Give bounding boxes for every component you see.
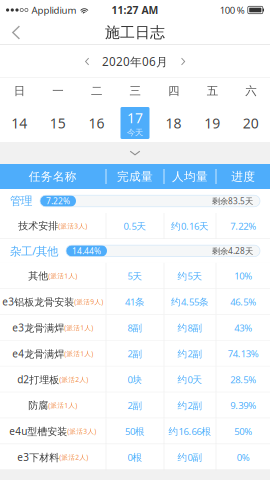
staticText: 0.5天 [123,219,146,232]
staticText: 14 [11,113,27,133]
staticText: 约2副 [177,347,202,360]
staticText: e3下材料 [17,450,59,464]
button[interactable]: d2打埋板 [0,366,270,392]
button[interactable]: 技术安排 [0,213,270,239]
staticText: 10% [234,269,252,282]
staticText: (派活1人) [64,323,93,332]
staticText: 五 [207,84,218,98]
button[interactable]: Back [0,20,32,45]
staticText: 约2副 [177,399,202,412]
staticText: 人均量 [172,169,208,184]
staticText: 43% [234,321,252,334]
staticText: 74.13% [228,347,259,360]
staticText: 100 % [220,3,245,17]
button[interactable]: 杂工/其他 [0,239,270,263]
staticText: 剩余83.5天 [212,195,253,207]
staticText: 2副 [127,347,142,360]
staticText: 2副 [127,399,142,412]
button[interactable]: e3龙骨满焊 [0,315,270,341]
staticText: 技术安排 [18,220,58,232]
staticText: 施工日志 [105,23,165,42]
staticText: 50根 [125,425,145,438]
staticText: 18 [166,113,182,133]
staticText: Applidium [31,3,76,17]
staticText: 约0.16天 [171,219,209,232]
staticText: (派活3人) [58,221,87,230]
button[interactable]: 17 [116,104,154,142]
staticText: 16 [88,113,104,133]
staticText: 二 [91,84,102,98]
staticText: 约16.66根 [168,425,211,438]
button[interactable]: Expand calendar [0,142,270,164]
staticText: e3龙骨满焊 [12,321,64,334]
button[interactable]: 19 [193,104,231,142]
staticText: 0% [237,451,250,464]
staticText: 六 [245,84,256,98]
button[interactable]: 管理 [0,189,270,213]
staticText: (派活3人) [67,427,96,436]
staticText: 17 [127,108,143,127]
staticText: 41条 [125,295,145,308]
staticText: 7.22% [46,195,70,207]
staticText: 今天 [127,127,143,138]
button[interactable]: 15 [39,104,77,142]
button[interactable]: e4龙骨满焊 [0,341,270,366]
staticText: 7.22% [230,219,256,232]
staticText: (派活2人) [59,453,88,462]
staticText: 约4.55条 [171,295,209,308]
staticText: 20 [243,113,259,133]
staticText: (派活1人) [48,271,77,280]
button[interactable]: 16 [77,104,116,142]
button[interactable]: e3铝板龙骨安装 [0,289,270,315]
staticText: 防腐 [28,399,48,412]
staticText: 剩余4.28天 [212,245,253,257]
button[interactable]: e4u型槽安装 [0,418,270,444]
staticText: 四 [168,84,179,98]
button[interactable]: 18 [154,104,193,142]
staticText: 日 [14,84,25,98]
staticText: e3铝板龙骨安装 [2,295,74,309]
staticText: 三 [129,84,140,98]
staticText: d2打埋板 [17,373,59,386]
staticText: 15 [50,113,66,133]
staticText: 50% [234,425,252,438]
staticText: 任务名称 [29,169,77,184]
staticText: 进度 [231,169,255,184]
staticText: 14.44% [72,245,101,257]
staticText: 完成量 [117,169,153,184]
button[interactable]: 2020年06月 [97,45,173,78]
button[interactable]: 防腐 [0,392,270,418]
staticText: 其他 [28,270,48,282]
staticText: 管理 [10,194,32,208]
staticText: 0根 [127,451,142,464]
staticText: 0块 [127,373,142,386]
button[interactable]: 其他 [0,263,270,289]
button[interactable]: 14 [0,104,39,142]
button[interactable]: Previous month [77,45,97,78]
staticText: e4u型槽安装 [9,424,67,438]
staticText: (派活2人) [59,375,88,384]
staticText: (派活1人) [64,349,93,358]
staticText: 约0天 [177,373,202,386]
staticText: e4龙骨满焊 [12,347,64,360]
staticText: 约8副 [177,321,202,334]
staticText: (派活9人) [74,297,103,306]
button[interactable]: 20 [231,104,270,142]
staticText: 46.5% [230,295,256,308]
staticText: 5天 [127,269,142,282]
staticText: 9.39% [230,399,256,412]
staticText: 19 [204,113,220,133]
staticText: 11:27 AM [111,3,158,17]
staticText: 杂工/其他 [10,243,58,259]
staticText: 8副 [127,321,142,334]
staticText: 2020年06月 [102,53,168,69]
staticText: 28.5% [230,373,256,386]
staticText: 约0副 [177,451,202,464]
button[interactable]: e3下材料 [0,444,270,470]
staticText: 一 [52,84,63,98]
button[interactable]: Next month [173,45,193,78]
staticText: 约5天 [177,269,202,282]
staticText: (派活1人) [48,401,77,410]
